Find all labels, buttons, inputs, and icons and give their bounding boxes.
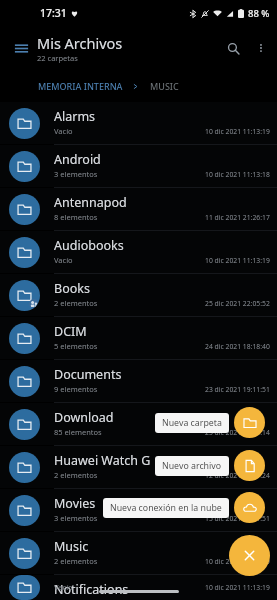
staticText: 10 dic 2021 11:13:19 [205, 256, 270, 265]
button[interactable]: Nueva conexión en la nube [234, 492, 265, 523]
staticText: 10 dic 2021 11:13:19 [205, 557, 270, 566]
staticText: Notifications [54, 581, 129, 598]
button[interactable]: Antennapod [0, 188, 277, 230]
button[interactable]: Cerrar menú [229, 535, 270, 576]
staticText: 17:31 [40, 6, 67, 20]
staticText: Movies [54, 495, 96, 512]
staticText: 23 dic 2021 19:11:51 [205, 385, 270, 394]
staticText: DCIM [54, 323, 87, 340]
staticText: Audiobooks [54, 237, 124, 254]
staticText: MUSIC [150, 80, 179, 92]
staticText: 25 dic 2021 16:44:14 [205, 428, 270, 437]
staticText: Nueva carpeta [162, 417, 222, 429]
button[interactable]: Documents [0, 360, 277, 402]
staticText: Download [54, 409, 114, 426]
staticText: 9 elementos [54, 384, 98, 394]
staticText: 3 elementos [54, 169, 98, 179]
staticText: 85 elementos [54, 427, 102, 437]
staticText: Nueva conexión en la nube [110, 502, 222, 514]
staticText: 2 elementos [54, 298, 98, 308]
button[interactable]: Music [0, 532, 277, 574]
staticText: Antennapod [54, 194, 127, 211]
staticText: 11 dic 2021 21:26:17 [205, 213, 270, 222]
staticText: 22 carpetas [37, 53, 78, 63]
button[interactable]: Huawei Watch G [0, 446, 277, 488]
button[interactable]: Alarms [0, 102, 277, 144]
button[interactable]: Nuevo archivo [155, 456, 229, 476]
staticText: Vacío [54, 582, 73, 592]
button[interactable]: Nueva conexión en la nube [103, 498, 229, 518]
button[interactable]: Download [0, 403, 277, 445]
button[interactable]: Nueva carpeta [155, 413, 229, 433]
staticText: 88 % [248, 7, 270, 20]
button[interactable]: Notifications [0, 575, 277, 600]
staticText: 2 elementos [54, 470, 98, 480]
staticText: Huawei Watch G [54, 452, 151, 469]
staticText: 2 elementos [54, 556, 98, 566]
staticText: MEMORIA INTERNA [38, 80, 123, 92]
button[interactable]: Android [0, 145, 277, 187]
staticText: Documents [54, 366, 122, 383]
button[interactable]: Books [0, 274, 277, 316]
button[interactable]: Audiobooks [0, 231, 277, 273]
button[interactable]: Movies [0, 489, 277, 531]
staticText: Mis Archivos [37, 33, 123, 53]
staticText: 5 elementos [54, 341, 98, 351]
staticText: Nuevo archivo [162, 460, 222, 472]
staticText: 10 dic 2021 11:13:18 [205, 170, 270, 179]
button[interactable]: Nuevo archivo [234, 450, 265, 481]
button[interactable]: Buscar [218, 33, 248, 63]
staticText: 24 dic 2021 18:18:40 [205, 342, 270, 351]
button[interactable]: Más opciones [248, 35, 274, 61]
staticText: Music [54, 538, 89, 555]
staticText: 10 dic 2021 11:13:19 [205, 127, 270, 136]
button[interactable]: MEMORIA INTERNA [38, 76, 123, 96]
staticText: Vacío [54, 126, 73, 136]
staticText: 12 dic 2021 14:11:24 [205, 471, 270, 480]
staticText: 3 elementos [54, 513, 98, 523]
button[interactable]: DCIM [0, 317, 277, 359]
staticText: 8 elementos [54, 212, 98, 222]
staticText: Vacío [54, 255, 73, 265]
staticText: 25 dic 2021 22:05:52 [205, 299, 270, 308]
staticText: Alarms [54, 108, 96, 125]
staticText: Books [54, 280, 90, 297]
staticText: Android [54, 151, 101, 168]
button[interactable]: MUSIC [150, 76, 179, 96]
button[interactable]: Nueva carpeta [234, 407, 265, 438]
staticText: 15 dic 2021 17:21:51 [205, 514, 270, 523]
button[interactable]: Abrir menú de navegación [8, 35, 34, 61]
staticText: 10 dic 2021 11:13:19 [205, 583, 270, 592]
